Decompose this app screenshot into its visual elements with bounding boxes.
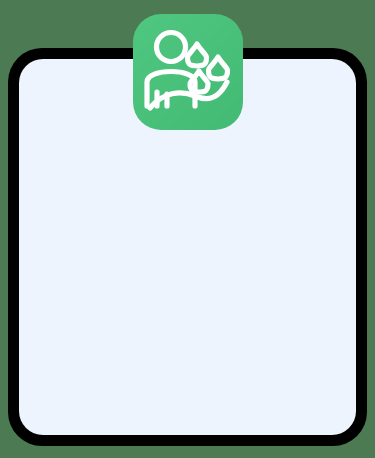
button[interactable]: Hygiene and water care bbox=[133, 14, 243, 130]
button[interactable] bbox=[8, 48, 367, 446]
